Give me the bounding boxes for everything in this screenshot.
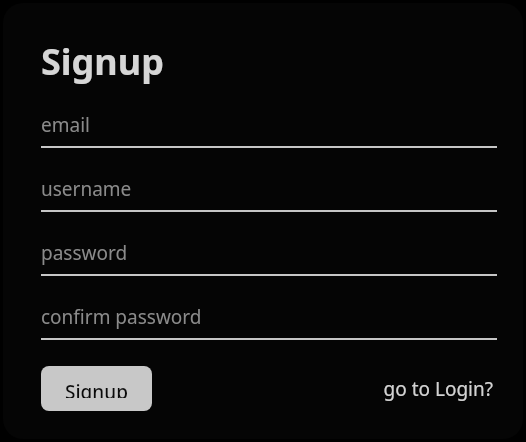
- button[interactable]: go to Login?: [379, 368, 497, 410]
- staticText: Signup: [65, 379, 128, 398]
- button[interactable]: Signup: [41, 366, 152, 411]
- staticText: confirm password: [41, 304, 202, 330]
- staticText: username: [41, 176, 132, 202]
- staticText: email: [41, 112, 90, 138]
- button[interactable]: password: [41, 236, 497, 276]
- button[interactable]: confirm password: [41, 300, 497, 340]
- staticText: password: [41, 240, 128, 266]
- button[interactable]: username: [41, 172, 497, 212]
- button[interactable]: email: [41, 108, 497, 148]
- staticText: Signup: [41, 37, 164, 86]
- staticText: go to Login?: [383, 376, 493, 402]
